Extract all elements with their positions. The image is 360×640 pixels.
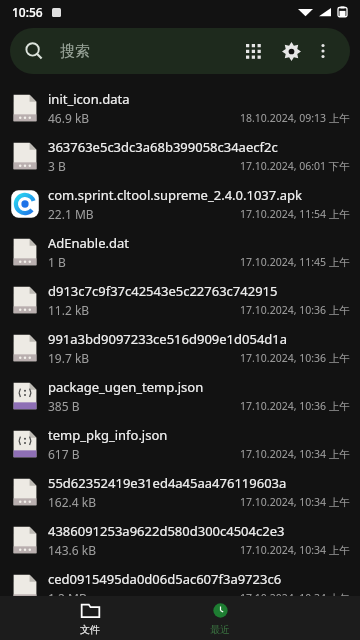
staticText: 10:56 xyxy=(12,4,43,20)
button[interactable]: init_icon.data xyxy=(0,84,360,132)
button[interactable]: 55d62352419e31ed4a45aa476119603a xyxy=(0,468,360,516)
staticText: 1.2 MB xyxy=(48,590,87,606)
button[interactable]: 4386091253a9622d580d300c4504c2e3 xyxy=(0,516,360,564)
staticText: 1 B xyxy=(48,254,66,270)
staticText: 11.2 kB xyxy=(48,302,90,318)
staticText: 363763e5c3dc3a68b399058c34aecf2c xyxy=(48,138,278,156)
staticText: d913c7c9f37c42543e5c22763c742915 xyxy=(48,282,278,300)
staticText: 385 B xyxy=(48,398,80,414)
staticText: 4386091253a9622d580d300c4504c2e3 xyxy=(48,522,285,540)
staticText: 17.10.2024, 10:34 上午 xyxy=(240,543,350,557)
staticText: 17.10.2024, 11:45 上午 xyxy=(240,255,350,269)
staticText: com.sprint.cltool.supreme_2.4.0.1037.apk xyxy=(48,186,302,204)
staticText: 3 B xyxy=(48,158,66,174)
staticText: 55d62352419e31ed4a45aa476119603a xyxy=(48,474,287,492)
staticText: 143.6 kB xyxy=(48,542,97,558)
staticText: 17.10.2024, 10:34 上午 xyxy=(240,495,350,509)
staticText: 17.10.2024, 10:36 上午 xyxy=(240,351,350,365)
button[interactable]: temp_pkg_info.json xyxy=(0,420,360,468)
staticText: 46.9 kB xyxy=(48,110,90,126)
staticText: 17.10.2024, 10:36 上午 xyxy=(240,399,350,413)
staticText: temp_pkg_info.json xyxy=(48,426,168,444)
staticText: 17.10.2024, 10:34 上午 xyxy=(240,591,350,605)
button[interactable]: More options xyxy=(310,38,336,64)
staticText: 617 B xyxy=(48,446,80,462)
staticText: 22.1 MB xyxy=(48,206,94,222)
staticText: 17.10.2024, 10:36 上午 xyxy=(240,303,350,317)
button[interactable]: Settings xyxy=(276,36,306,66)
staticText: package_ugen_temp.json xyxy=(48,378,204,396)
staticText: init_icon.data xyxy=(48,90,130,108)
button[interactable]: package_ugen_temp.json xyxy=(0,372,360,420)
staticText: 162.4 kB xyxy=(48,494,97,510)
staticText: 17.10.2024, 11:54 上午 xyxy=(240,207,350,221)
button[interactable]: AdEnable.dat xyxy=(0,228,360,276)
button[interactable]: com.sprint.cltool.supreme_2.4.0.1037.apk xyxy=(0,180,360,228)
button[interactable]: ced0915495da0d06d5ac607f3a9723c6 xyxy=(0,564,360,612)
staticText: 文件 xyxy=(80,623,100,636)
button[interactable]: Grid view xyxy=(238,36,268,66)
button[interactable]: d913c7c9f37c42543e5c22763c742915 xyxy=(0,276,360,324)
button[interactable]: 文件 xyxy=(50,596,130,640)
staticText: 19.7 kB xyxy=(48,350,90,366)
button[interactable]: 991a3bd9097233ce516d909e1d054d1a xyxy=(0,324,360,372)
button[interactable]: Search xyxy=(10,28,350,74)
staticText: ced0915495da0d06d5ac607f3a9723c6 xyxy=(48,570,282,588)
staticText: 17.10.2024, 10:34 上午 xyxy=(240,447,350,461)
staticText: 17.10.2024, 06:01 下午 xyxy=(240,159,350,173)
button[interactable]: 363763e5c3dc3a68b399058c34aecf2c xyxy=(0,132,360,180)
staticText: 搜索 xyxy=(60,42,90,61)
staticText: 18.10.2024, 09:13 上午 xyxy=(240,111,350,125)
staticText: 最近 xyxy=(210,623,230,636)
button[interactable]: 最近 xyxy=(180,596,260,640)
staticText: 991a3bd9097233ce516d909e1d054d1a xyxy=(48,330,288,348)
staticText: AdEnable.dat xyxy=(48,234,130,252)
other: Search xyxy=(24,41,44,61)
